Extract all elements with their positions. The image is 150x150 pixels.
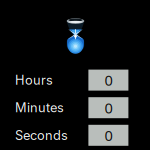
staticText: Hours [15,72,53,88]
staticText: 0 [104,70,112,90]
staticText: Minutes [15,100,64,115]
button[interactable]: 0 [88,125,128,146]
staticText: 0 [104,98,112,117]
button[interactable]: 0 [88,70,128,91]
staticText: Seconds [15,128,68,143]
staticText: 0 [104,126,112,145]
button[interactable]: 0 [88,97,128,118]
